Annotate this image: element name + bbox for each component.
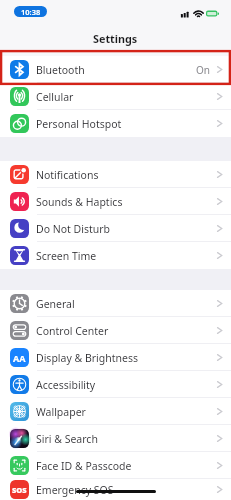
button[interactable]: Do Not Disturb — [0, 215, 231, 242]
staticText: Face ID & Passcode — [36, 459, 132, 473]
button[interactable]: Notifications — [0, 161, 231, 188]
staticText: Display & Brightness — [36, 351, 139, 365]
staticText: Control Center — [36, 324, 109, 338]
staticText: On — [196, 63, 210, 77]
staticText: Emergency SOS — [36, 483, 114, 497]
staticText: Cellular — [36, 90, 74, 104]
button[interactable]: Cellular — [0, 83, 231, 110]
button[interactable]: General — [0, 290, 231, 317]
staticText: Wallpaper — [36, 405, 86, 419]
staticText: AA — [13, 352, 26, 364]
staticText: 10:38 — [21, 7, 41, 17]
staticText: SOS — [12, 485, 27, 495]
button[interactable]: Face ID & Passcode — [0, 452, 231, 479]
button[interactable]: Siri & Search — [0, 425, 231, 452]
staticText: Personal Hotspot — [36, 117, 122, 131]
button[interactable]: AA — [0, 344, 231, 371]
button[interactable]: SOS — [0, 479, 231, 500]
button[interactable]: Personal Hotspot — [0, 110, 231, 137]
button[interactable]: Bluetooth — [0, 56, 231, 83]
staticText: Accessibility — [36, 378, 96, 392]
button[interactable]: Sounds & Haptics — [0, 188, 231, 215]
staticText: Bluetooth — [36, 63, 85, 77]
staticText: Screen Time — [36, 249, 97, 263]
button[interactable]: Screen Time — [0, 242, 231, 269]
staticText: Notifications — [36, 168, 99, 182]
staticText: Sounds & Haptics — [36, 195, 123, 209]
staticText: Siri & Search — [36, 432, 98, 446]
button[interactable]: Accessibility — [0, 371, 231, 398]
staticText: General — [36, 297, 75, 311]
staticText: Do Not Disturb — [36, 222, 111, 236]
staticText: Settings — [93, 31, 138, 46]
button[interactable]: Control Center — [0, 317, 231, 344]
button[interactable]: Wallpaper — [0, 398, 231, 425]
